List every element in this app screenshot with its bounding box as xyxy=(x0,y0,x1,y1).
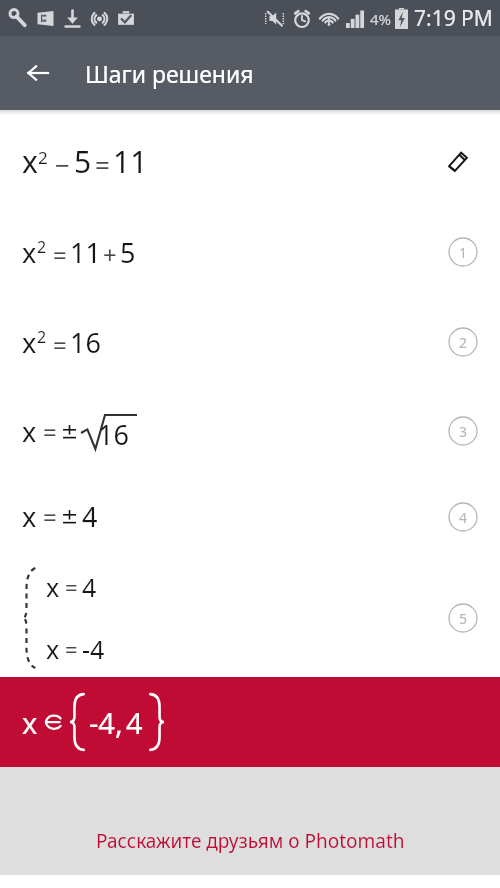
button[interactable]: x xyxy=(0,115,500,207)
staticText: x xyxy=(22,498,37,535)
staticText: − xyxy=(55,147,70,182)
button[interactable]: x xyxy=(0,207,500,297)
staticText: Шаги решения xyxy=(85,58,254,89)
staticText: 5 xyxy=(74,141,92,182)
staticText: , xyxy=(115,703,123,742)
staticText: = xyxy=(53,328,67,361)
button[interactable]: x xyxy=(0,387,500,474)
button[interactable]: Расскажите друзьям о Photomath xyxy=(0,767,500,875)
staticText: x xyxy=(22,703,38,742)
staticText: x xyxy=(22,413,37,450)
staticText: 2 xyxy=(37,236,47,258)
staticText: 5 xyxy=(459,609,468,628)
staticText: 11 xyxy=(70,234,101,271)
staticText: 4 xyxy=(459,508,468,527)
staticText: -4 xyxy=(82,632,105,666)
staticText: 4 xyxy=(82,498,98,535)
staticText: 4 xyxy=(82,570,97,604)
staticText: x xyxy=(22,324,37,361)
staticText: 16 xyxy=(98,416,129,453)
button[interactable]: Edit equation xyxy=(438,141,478,181)
staticText: x xyxy=(22,234,37,271)
button[interactable]: x xyxy=(0,474,500,559)
staticText: = xyxy=(65,634,78,664)
staticText: = xyxy=(65,572,78,602)
staticText: x xyxy=(22,141,38,182)
staticText: 1 xyxy=(459,243,468,262)
staticText: 16 xyxy=(70,324,101,361)
staticText: + xyxy=(103,238,117,271)
staticText: 2 xyxy=(459,333,468,352)
staticText: x xyxy=(46,570,60,604)
staticText: = xyxy=(43,500,57,533)
staticText: 2 xyxy=(37,326,47,348)
staticText: 4% xyxy=(370,9,392,29)
button[interactable]: x xyxy=(0,677,500,767)
staticText: Расскажите друзьям о Photomath xyxy=(96,828,405,854)
staticText: 7:19 PM xyxy=(414,4,493,33)
staticText: x xyxy=(46,632,60,666)
button[interactable]: x xyxy=(0,559,500,677)
staticText: 5 xyxy=(120,234,136,271)
staticText: -4 xyxy=(89,703,115,742)
staticText: 3 xyxy=(459,422,468,441)
button[interactable]: x xyxy=(0,297,500,387)
staticText: = xyxy=(43,415,57,448)
staticText: 2 xyxy=(38,146,48,169)
staticText: 11 xyxy=(113,141,148,182)
button[interactable]: Back xyxy=(18,53,58,93)
staticText: = xyxy=(95,147,110,182)
staticText: 4 xyxy=(126,703,143,742)
staticText: = xyxy=(53,238,67,271)
